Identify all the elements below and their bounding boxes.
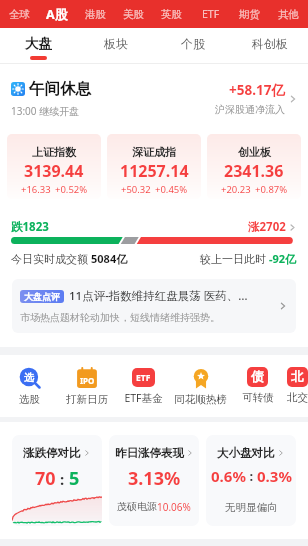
staticText: 涨2702 [248,219,286,235]
button[interactable]: 债 [229,355,286,417]
staticText: 3139.44 [24,160,84,182]
staticText: 同花顺热榜 [174,393,227,406]
staticText: : [56,469,69,489]
button[interactable]: 其他 [269,0,308,28]
staticText: 港股 [85,8,106,21]
staticText: -92亿 [269,251,297,266]
staticText: +20.23 [221,183,251,196]
staticText: ETF [136,372,151,384]
button[interactable]: 全球 [0,0,38,28]
staticText: +58.17亿 [229,81,285,99]
button[interactable]: 同花顺热榜 [172,355,229,417]
staticText: 选 [24,371,34,384]
button[interactable]: 昨日涨停表现 [109,435,199,526]
button[interactable]: 上证指数 [7,134,101,199]
staticText: 期货 [239,8,260,21]
staticText: 美股 [123,8,144,21]
button[interactable]: 大盘 [0,28,77,64]
staticText: 10.06% [157,500,191,514]
staticText: ETF基金 [124,391,163,405]
staticText: 其他 [278,8,299,21]
staticText: 大盘 [25,35,52,52]
staticText: 70 [35,466,56,491]
staticText: 午间休息 [29,79,91,99]
button[interactable]: 板块 [77,28,154,64]
staticText: +0.52% [55,183,88,196]
staticText: 5084亿 [91,251,128,266]
staticText: 市场热点题材轮动加快，短线情绪维持强势。 [20,311,220,324]
button[interactable]: 期货 [230,0,269,28]
staticText: A股 [46,6,68,23]
staticText: 11257.14 [120,160,189,182]
button[interactable]: 大小盘对比 [206,435,296,526]
staticText: IPO [80,375,95,386]
staticText: 5 [69,466,80,491]
button[interactable]: 英股 [152,0,191,28]
staticText: 昨日涨停表现 [115,446,184,460]
staticText: 0.6% [211,466,246,486]
staticText: 0.3% [257,466,292,486]
button[interactable]: 个股 [154,28,231,64]
staticText: 涨跌停对比 [23,446,81,460]
staticText: 北 [291,369,304,385]
button[interactable]: ETF [115,355,172,417]
staticText: +16.33 [21,183,51,196]
button[interactable]: 涨跌停对比 [12,435,102,526]
staticText: 无明显偏向 [225,501,278,514]
button[interactable]: 科创板 [231,28,308,64]
staticText: 沪深股通净流入 [215,103,285,116]
button[interactable]: 大盘点评 [12,279,296,333]
button[interactable]: IPO [58,355,115,417]
staticText: 个股 [181,36,205,51]
staticText: +0.87% [255,183,288,196]
staticText: 深证成指 [132,145,176,159]
staticText: 大小盘对比 [217,446,275,460]
staticText: 选股 [19,393,40,406]
button[interactable]: 深证成指 [107,134,201,199]
staticText: +50.32 [121,183,151,196]
button[interactable]: 港股 [76,0,114,28]
button[interactable]: 北 [286,355,308,417]
staticText: 全球 [9,8,30,21]
staticText: 大盘点评 [24,291,60,302]
staticText: 3.13% [128,466,181,491]
staticText: 11点评-指数维持红盘晨荡 医药、… [69,288,248,304]
staticText: 板块 [104,36,128,51]
staticText: : [246,467,257,485]
staticText: 13:00 继续开盘 [11,104,80,118]
staticText: 北交所 [286,391,308,404]
button[interactable]: A股 [38,0,76,28]
staticText: ETF [202,7,220,21]
staticText: 科创板 [252,36,288,51]
staticText: 英股 [161,8,182,21]
staticText: 可转债 [242,391,274,404]
button[interactable]: 美股 [114,0,152,28]
staticText: 打新日历 [66,393,108,406]
staticText: +0.45% [155,183,188,196]
staticText: 茂硕电源 [117,500,157,513]
staticText: 创业板 [238,145,271,159]
staticText: 跌1823 [11,219,49,235]
button[interactable]: 选 [1,355,58,417]
staticText: 上证指数 [32,145,76,159]
button[interactable]: ETF [191,0,230,28]
staticText: 今日实时成交额 [11,251,91,266]
staticText: 2341.36 [224,160,284,182]
button[interactable]: 创业板 [207,134,301,199]
staticText: 较上一日此时 [200,251,269,266]
staticText: 债 [251,369,264,385]
